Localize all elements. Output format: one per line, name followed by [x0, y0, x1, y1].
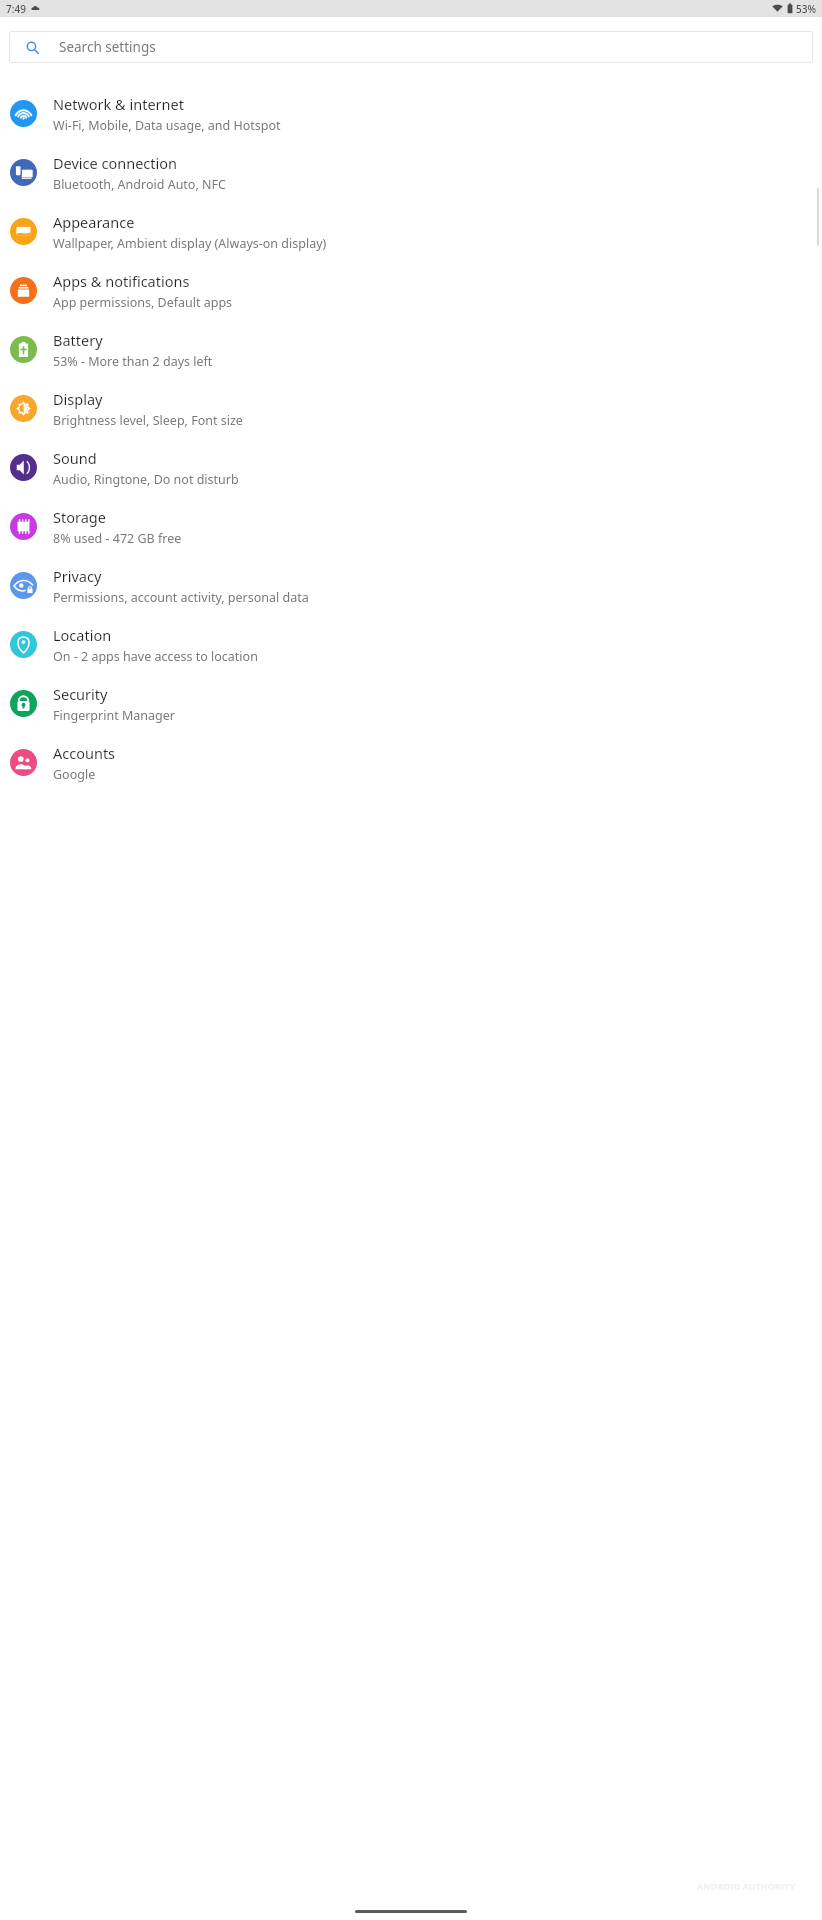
- button[interactable]: Sound: [0, 438, 822, 497]
- staticText: Sound: [53, 448, 97, 468]
- staticText: Bluetooth, Android Auto, NFC: [53, 176, 226, 193]
- staticText: 53%: [796, 2, 816, 16]
- staticText: Security: [53, 684, 108, 704]
- button[interactable]: Security: [0, 674, 822, 733]
- staticText: Audio, Ringtone, Do not disturb: [53, 471, 239, 488]
- staticText: Apps & notifications: [53, 271, 190, 291]
- staticText: Storage: [53, 507, 106, 527]
- staticText: Location: [53, 625, 112, 645]
- staticText: Device connection: [53, 153, 177, 173]
- staticText: Battery: [53, 330, 103, 350]
- staticText: 53% - More than 2 days left: [53, 353, 213, 370]
- staticText: App permissions, Default apps: [53, 294, 233, 311]
- button[interactable]: Apps & notifications: [0, 261, 822, 320]
- staticText: Accounts: [53, 743, 116, 763]
- button[interactable]: Privacy: [0, 556, 822, 615]
- staticText: Privacy: [53, 566, 102, 586]
- staticText: Wallpaper, Ambient display (Always-on di…: [53, 235, 327, 252]
- staticText: Fingerprint Manager: [53, 707, 175, 724]
- staticText: Display: [53, 389, 103, 409]
- staticText: Brightness level, Sleep, Font size: [53, 412, 243, 429]
- button[interactable]: Location: [0, 615, 822, 674]
- staticText: On - 2 apps have access to location: [53, 648, 258, 665]
- button[interactable]: Appearance: [0, 202, 822, 261]
- staticText: 7:49: [6, 2, 26, 16]
- button[interactable]: Battery: [0, 320, 822, 379]
- button[interactable]: Search settings: [9, 31, 813, 63]
- staticText: Wi-Fi, Mobile, Data usage, and Hotspot: [53, 117, 281, 134]
- button[interactable]: Device connection: [0, 143, 822, 202]
- staticText: ANDROID AUTHORITY: [697, 1880, 796, 1892]
- staticText: 8% used - 472 GB free: [53, 530, 182, 547]
- staticText: Network & internet: [53, 94, 184, 114]
- button[interactable]: Network & internet: [0, 84, 822, 143]
- staticText: Google: [53, 766, 96, 783]
- button[interactable]: Storage: [0, 497, 822, 556]
- staticText: Permissions, account activity, personal …: [53, 589, 309, 606]
- button[interactable]: Accounts: [0, 733, 822, 792]
- button[interactable]: Display: [0, 379, 822, 438]
- staticText: Search settings: [59, 38, 156, 56]
- staticText: Appearance: [53, 212, 135, 232]
